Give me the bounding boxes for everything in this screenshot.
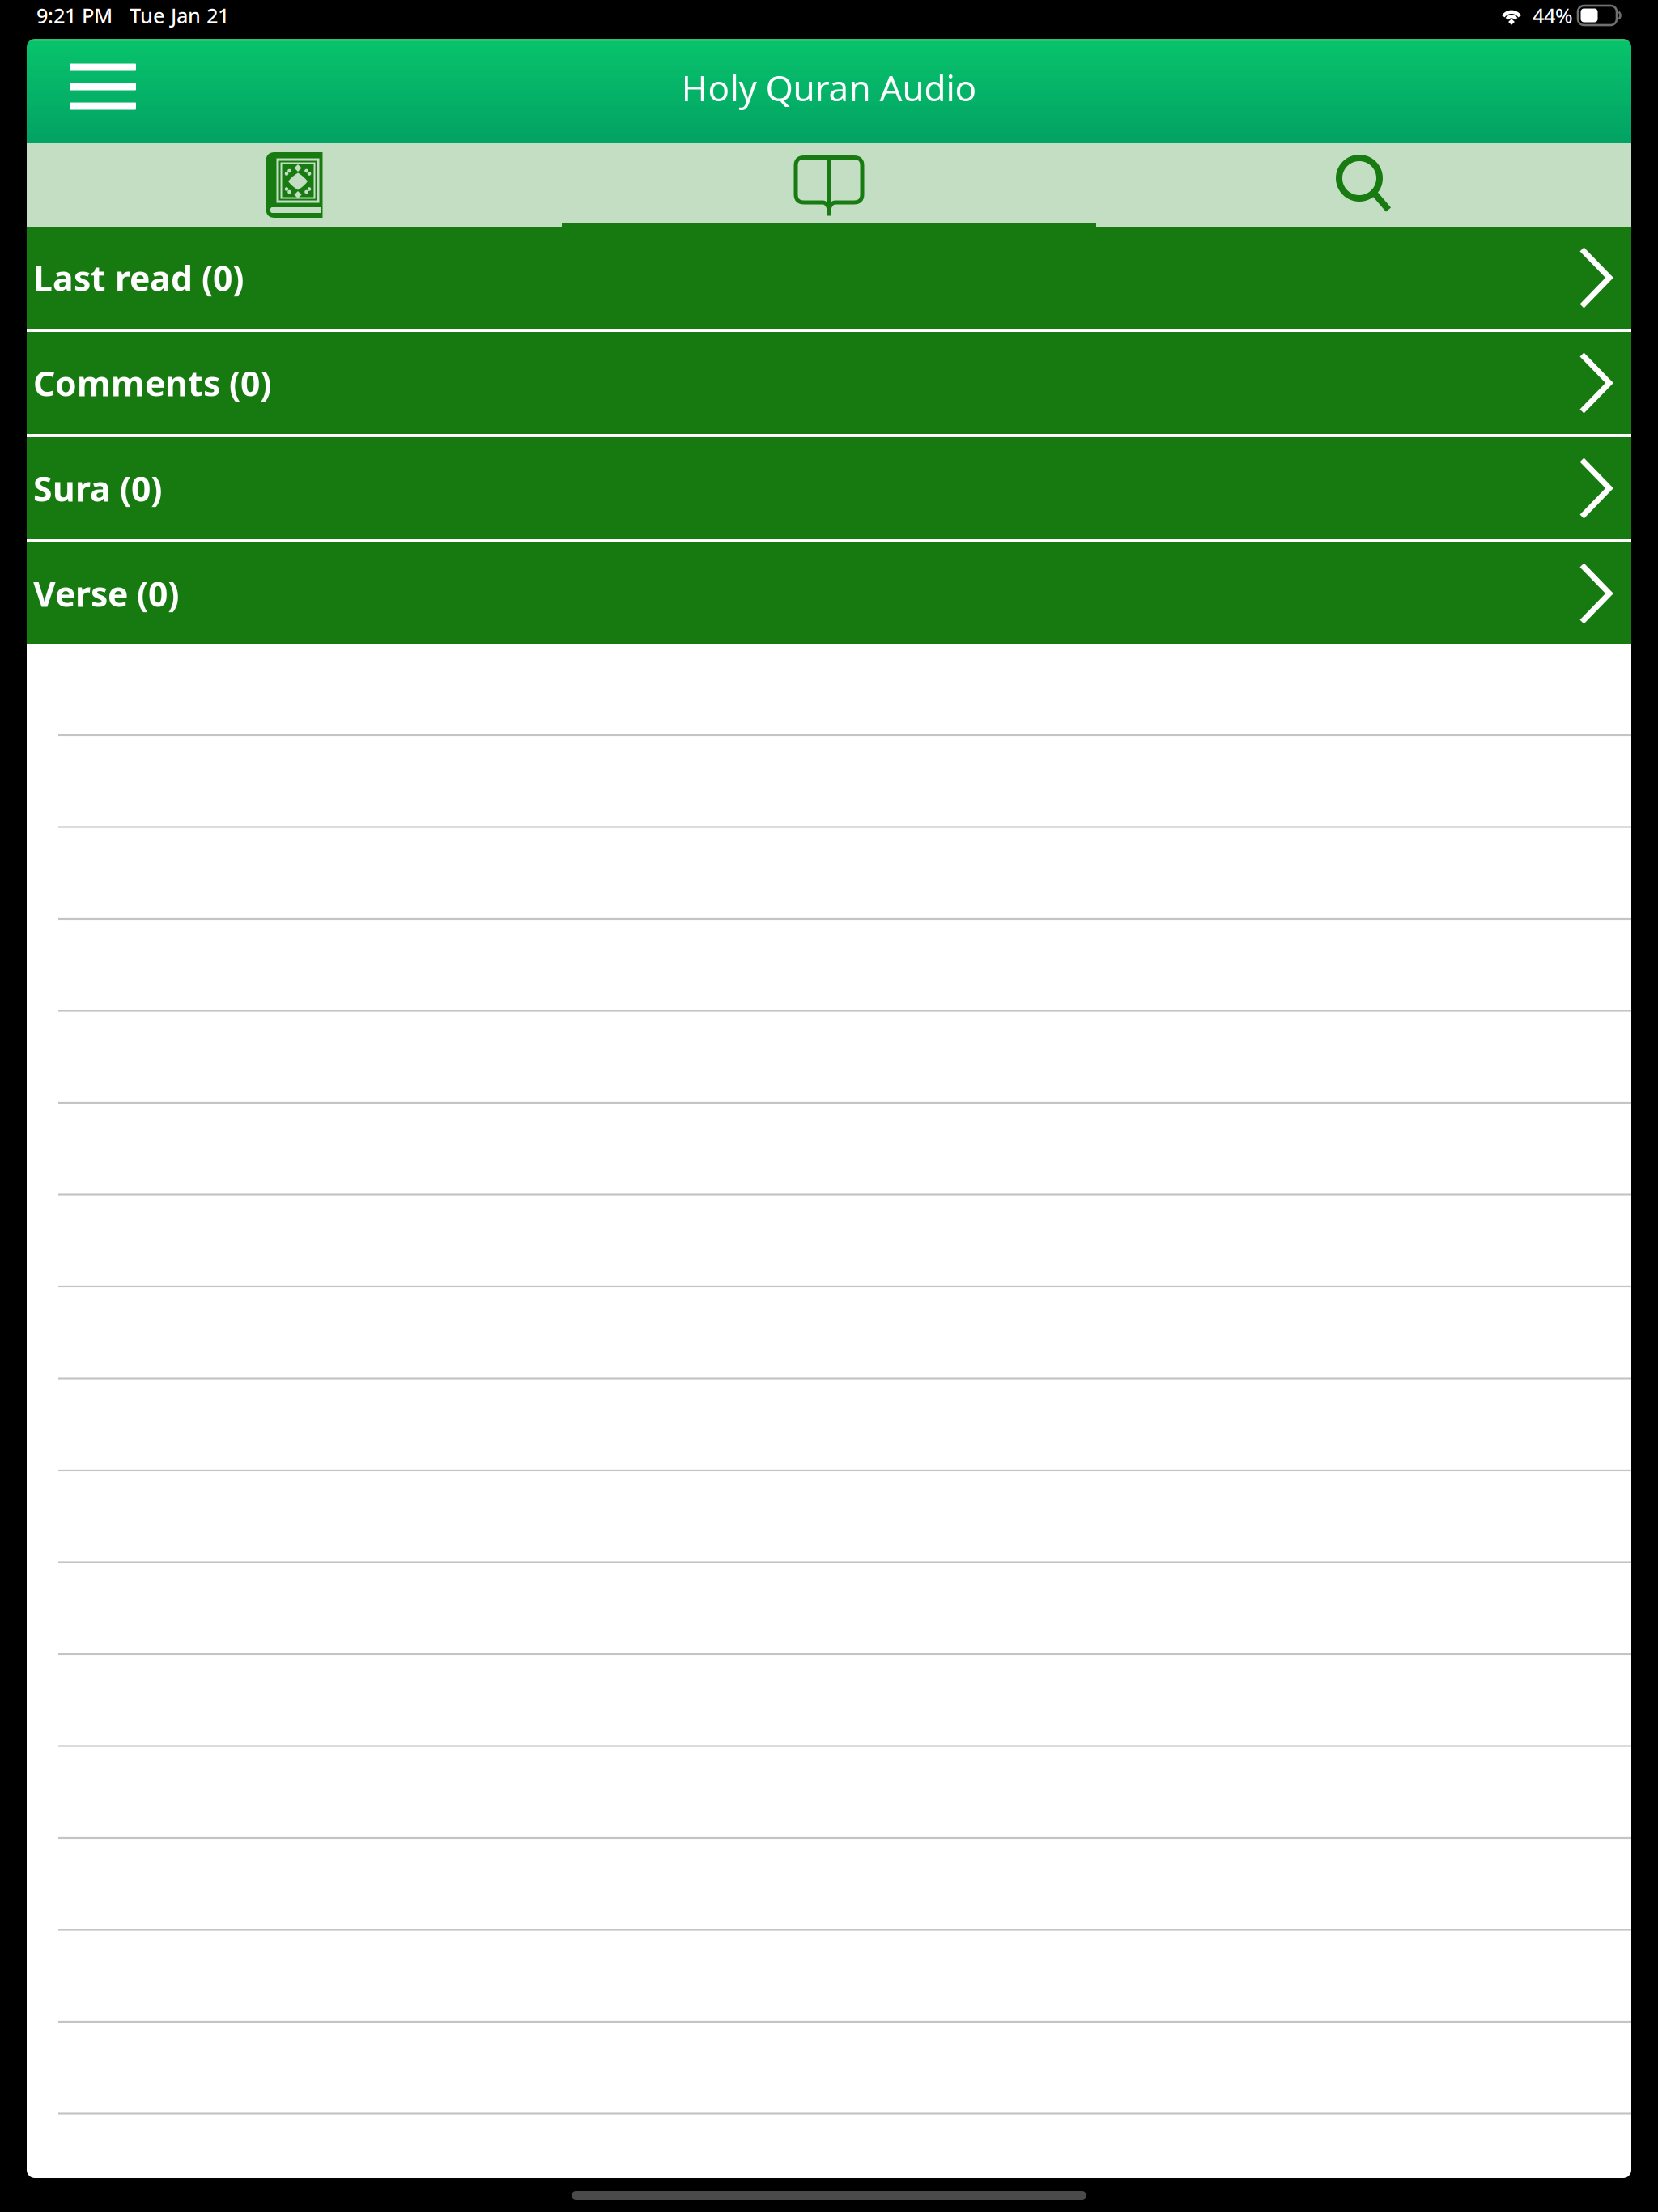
staticText: Sura (0) xyxy=(33,465,162,511)
staticText: 44% xyxy=(1533,2,1573,29)
staticText: Last read (0) xyxy=(33,255,244,301)
button[interactable]: Last read (0) xyxy=(27,227,1631,329)
button[interactable]: Menu xyxy=(42,35,164,138)
staticText: Tue Jan 21 xyxy=(130,2,229,29)
staticText: Holy Quran Audio xyxy=(681,64,977,111)
button[interactable]: Read xyxy=(562,143,1096,227)
button[interactable]: Comments (0) xyxy=(27,332,1631,434)
staticText: Verse (0) xyxy=(33,571,179,616)
staticText: Comments (0) xyxy=(33,360,271,406)
button[interactable]: Verse (0) xyxy=(27,542,1631,644)
button[interactable]: Sura (0) xyxy=(27,437,1631,539)
staticText: 9:21 PM xyxy=(36,2,113,29)
button[interactable]: Quran xyxy=(27,143,562,227)
button[interactable]: Search xyxy=(1096,143,1631,227)
